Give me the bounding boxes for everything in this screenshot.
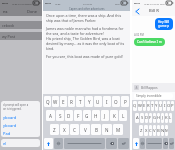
staticText: yboard [3,123,17,128]
button[interactable]: A [135,113,139,123]
staticText: wy Post [2,34,15,39]
button[interactable]: I [163,101,166,111]
button[interactable]: Shift [133,138,139,149]
button[interactable]: O [112,96,120,107]
staticText: T [151,103,154,109]
button[interactable]: B [91,124,101,135]
staticText: Simply incredible [136,94,162,98]
staticText: G [153,115,156,121]
button[interactable]: Q [44,96,51,107]
button[interactable]: E [143,101,146,111]
button[interactable]: V [153,125,156,136]
button[interactable]: el [1,139,40,147]
button[interactable]: A [46,110,55,121]
button[interactable]: K [165,113,168,123]
button[interactable]: M [165,125,168,136]
button[interactable]: Z [50,124,59,135]
button[interactable]: U [94,96,102,107]
button[interactable]: Z [139,125,143,136]
button[interactable]: T [76,96,84,107]
button[interactable]: Delete [163,138,168,149]
button[interactable]: G [153,113,156,123]
staticText: Z [140,128,143,134]
button[interactable]: Return [169,138,174,149]
button[interactable]: Q [133,101,137,111]
button[interactable]: X [60,124,69,135]
staticText: W [138,103,142,109]
staticText: U [96,99,100,105]
button[interactable]: yboard [1,121,40,129]
staticText: I [106,99,108,105]
button[interactable]: X [144,125,148,136]
button[interactable]: Done [26,8,39,15]
button[interactable]: O [167,101,170,111]
button[interactable]: Back [134,8,140,14]
button[interactable]: cebook [0,21,42,29]
staticText: V [84,127,87,133]
button[interactable]: W [138,101,142,111]
button[interactable]: J [101,110,109,121]
button[interactable]: R [68,96,75,107]
button[interactable]: E [60,96,67,107]
button[interactable]: Can't believe I m [137,40,162,44]
button[interactable]: J [161,113,164,123]
staticText: L [169,115,172,121]
button[interactable]: P [121,96,129,107]
button[interactable]: C [70,124,79,135]
button[interactable]: Shift [44,138,53,149]
button[interactable]: F [149,113,152,123]
button[interactable]: L [169,113,172,123]
button[interactable]: Pad [1,129,40,137]
button[interactable]: Y [155,101,158,111]
button[interactable]: Space [64,138,105,149]
staticText: 28% [160,2,165,5]
button[interactable]: Return [118,138,129,149]
button[interactable]: Bill Rappos [134,83,173,92]
staticText: Once upon a time, there was a ship. And … [46,13,127,23]
button[interactable]: T [151,101,154,111]
staticText: J [104,113,106,119]
button[interactable]: Delete [106,138,117,149]
staticText: I [164,103,166,109]
button[interactable]: I [103,96,111,107]
button[interactable]: U [159,101,162,111]
button[interactable]: V [80,124,90,135]
staticText: Bill Rappos [141,86,158,90]
button[interactable]: M [113,124,123,135]
button[interactable]: Next keyboard [140,138,145,149]
button[interactable]: yboard [1,113,40,121]
button[interactable]: H [92,110,100,121]
staticText: Hey Bill [158,20,170,24]
button[interactable]: Y [85,96,93,107]
button[interactable]: K [110,110,118,121]
button[interactable]: H [157,113,160,123]
staticText: 4:02 PM [134,33,144,37]
button[interactable]: C [149,125,152,136]
button[interactable]: Simply incredible [134,93,173,99]
button[interactable]: L [119,110,127,121]
button[interactable]: D [145,113,148,123]
button[interactable]: G [83,110,91,121]
button[interactable]: wy Post [0,32,42,40]
button[interactable]: R [147,101,150,111]
button[interactable]: W [52,96,59,107]
button[interactable]: S [140,113,144,123]
button[interactable]: Hey Bill [158,20,170,28]
button[interactable]: B [157,125,160,136]
button[interactable]: S [56,110,64,121]
staticText: 28% [115,2,120,5]
staticText: 3:16 PM [83,2,92,5]
button[interactable]: D [65,110,73,121]
button[interactable]: Space [146,138,162,149]
button[interactable]: N [161,125,164,136]
staticText: AT&T [55,2,61,5]
staticText: Capers and other adventures [69,7,105,11]
staticText: el [3,141,7,146]
button[interactable]: Next keyboard [54,138,63,149]
staticText: game p [158,24,170,28]
staticText: N [105,127,109,133]
button[interactable]: N [102,124,112,135]
button[interactable]: F [74,110,82,121]
button[interactable]: P [171,101,174,111]
staticText: L [122,113,125,119]
